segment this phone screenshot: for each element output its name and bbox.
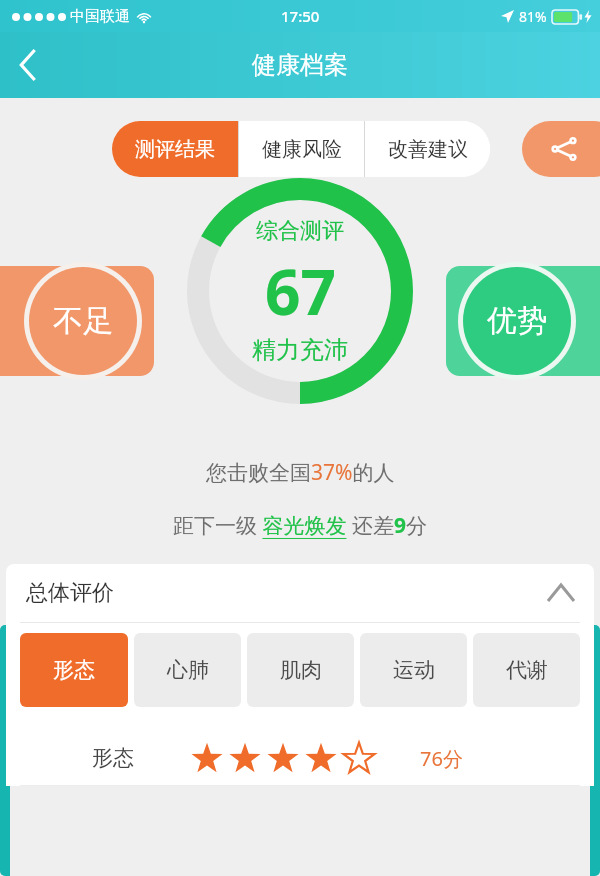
staticText: 肌肉: [280, 657, 322, 683]
button[interactable]: 总体评价: [6, 564, 594, 622]
staticText: 形态: [92, 745, 134, 771]
staticText: 测评结果: [135, 137, 215, 162]
other: Collapse: [548, 585, 574, 601]
staticText: 中国联通: [70, 7, 130, 26]
button[interactable]: 形态: [6, 731, 594, 785]
button[interactable]: 形态: [20, 633, 128, 707]
button[interactable]: 心肺: [134, 633, 241, 707]
button[interactable]: Share: [522, 121, 600, 177]
staticText: 综合测评: [256, 217, 344, 245]
button[interactable]: 测评结果: [112, 121, 238, 177]
button[interactable]: 运动: [360, 633, 467, 707]
button[interactable]: 不足: [24, 262, 142, 380]
staticText: 健康风险: [262, 137, 342, 162]
staticText: 精力充沛: [252, 335, 348, 365]
staticText: 健康档案: [252, 50, 348, 80]
staticText: 81%: [519, 7, 547, 26]
staticText: 距下一级 容光焕发 还差9分: [173, 511, 427, 540]
staticText: 您击败全国37%的人: [206, 458, 395, 487]
staticText: 代谢: [506, 657, 548, 683]
staticText: 运动: [393, 657, 435, 683]
staticText: 改善建议: [388, 137, 468, 162]
staticText: 67: [265, 249, 336, 333]
button[interactable]: 健康风险: [239, 121, 364, 177]
button[interactable]: 优势: [458, 262, 576, 380]
button[interactable]: 代谢: [473, 633, 580, 707]
staticText: 总体评价: [26, 579, 114, 607]
staticText: 心肺: [167, 657, 209, 683]
staticText: 17:50: [281, 6, 320, 26]
button[interactable]: Back: [0, 37, 56, 93]
staticText: 不足: [53, 302, 113, 340]
staticText: 形态: [53, 657, 95, 683]
staticText: 优势: [487, 302, 547, 340]
staticText: 76分: [420, 745, 463, 772]
button[interactable]: 肌肉: [247, 633, 354, 707]
button[interactable]: 改善建议: [365, 121, 490, 177]
button[interactable]: 综合测评: [187, 178, 413, 404]
